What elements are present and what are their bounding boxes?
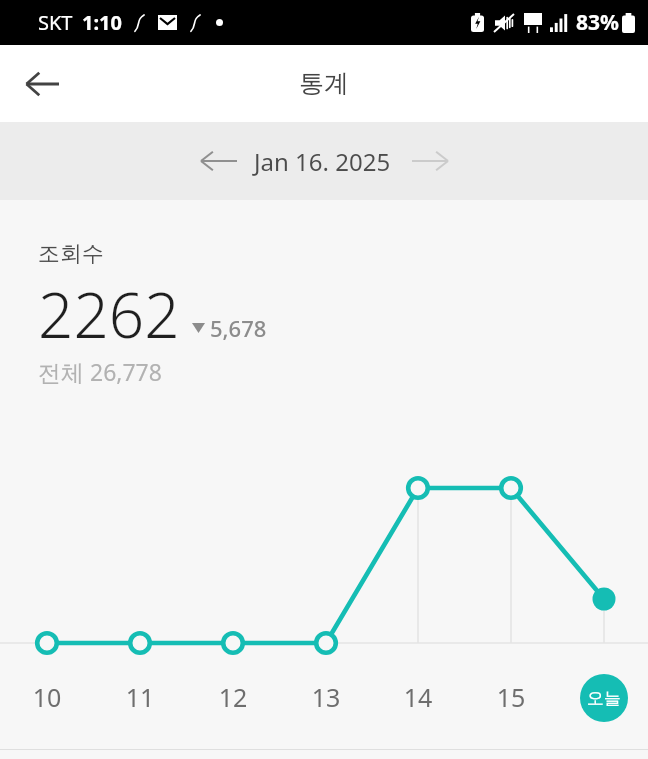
staticText: 2262 <box>38 272 180 356</box>
staticText: 1:10 <box>82 9 122 36</box>
staticText: 14 <box>383 680 453 714</box>
staticText: 통계 <box>299 68 349 99</box>
staticText: Jan 16. 2025 <box>254 145 391 178</box>
button[interactable]: Previous day <box>192 134 246 188</box>
staticText: 11 <box>105 680 175 714</box>
button[interactable]: Next day <box>403 134 457 188</box>
staticText: 12 <box>198 680 268 714</box>
staticText: 13 <box>291 680 361 714</box>
staticText: SKT <box>38 9 73 36</box>
staticText: 전체 26,778 <box>38 356 162 387</box>
staticText: 15 <box>476 680 546 714</box>
staticText: 오늘 <box>587 688 621 709</box>
staticText: 조회수 <box>38 240 104 268</box>
staticText: 83% <box>576 8 619 37</box>
button[interactable]: 오늘 <box>580 674 628 722</box>
staticText: 10 <box>12 680 82 714</box>
button[interactable]: Back <box>12 54 72 114</box>
staticText: 5,678 <box>210 313 267 343</box>
